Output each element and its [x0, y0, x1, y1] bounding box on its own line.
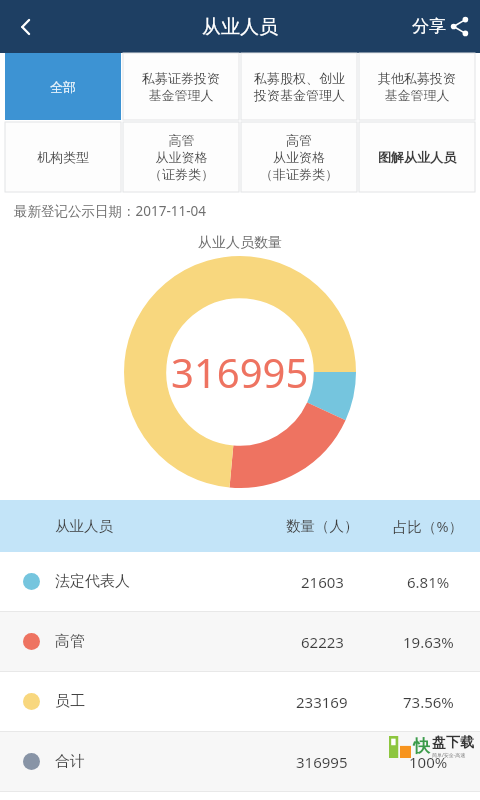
staticText: 私募证券投资 基金管理人: [142, 70, 220, 104]
staticText: 盘下载: [432, 734, 474, 752]
staticText: 100%: [409, 752, 448, 772]
button[interactable]: 分享: [412, 0, 480, 53]
button[interactable]: 高管 从业资格 （非证券类）: [241, 122, 357, 192]
staticText: 图解从业人员: [378, 149, 456, 165]
staticText: 从业人员: [55, 517, 113, 535]
staticText: 员工: [55, 692, 85, 711]
staticText: 21603: [301, 572, 344, 592]
staticText: 分享: [412, 16, 446, 37]
staticText: 73.56%: [403, 692, 454, 712]
staticText: 最新登记公示日期：2017-11-04: [14, 202, 206, 220]
staticText: 占比（%）: [393, 516, 464, 536]
staticText: 快: [413, 736, 430, 757]
staticText: 高管 从业资格 （非证券类）: [260, 132, 338, 183]
button[interactable]: 合计: [0, 732, 480, 791]
staticText: 从业人员数量: [0, 234, 480, 252]
staticText: 316995: [171, 345, 309, 399]
button[interactable]: 高管 从业资格 （证券类）: [123, 122, 239, 192]
staticText: 从业人员: [202, 15, 278, 39]
staticText: 合计: [55, 752, 85, 771]
button[interactable]: 机构类型: [5, 122, 121, 192]
staticText: 私募股权、创业 投资基金管理人: [254, 70, 345, 104]
staticText: 233169: [296, 692, 348, 712]
staticText: 法定代表人: [55, 572, 130, 591]
button[interactable]: 图解从业人员: [359, 122, 475, 192]
staticText: 简单/安全·高速: [432, 752, 466, 759]
button[interactable]: 员工: [0, 672, 480, 731]
button[interactable]: 私募证券投资 基金管理人: [123, 53, 239, 120]
staticText: 6.81%: [407, 572, 450, 592]
staticText: 高管: [55, 632, 85, 651]
button[interactable]: 全部: [5, 53, 121, 120]
button[interactable]: 高管: [0, 612, 480, 671]
staticText: 19.63%: [403, 632, 454, 652]
staticText: 数量（人）: [286, 517, 359, 535]
staticText: 高管 从业资格 （证券类）: [149, 132, 214, 183]
staticText: 316995: [296, 752, 348, 772]
staticText: 机构类型: [37, 149, 89, 165]
staticText: 全部: [50, 79, 76, 95]
staticText: 62223: [301, 632, 344, 652]
staticText: 其他私募投资 基金管理人: [378, 70, 456, 104]
button[interactable]: 法定代表人: [0, 552, 480, 611]
button[interactable]: 其他私募投资 基金管理人: [359, 53, 475, 120]
button[interactable]: Back: [0, 0, 52, 53]
button[interactable]: 私募股权、创业 投资基金管理人: [241, 53, 357, 120]
